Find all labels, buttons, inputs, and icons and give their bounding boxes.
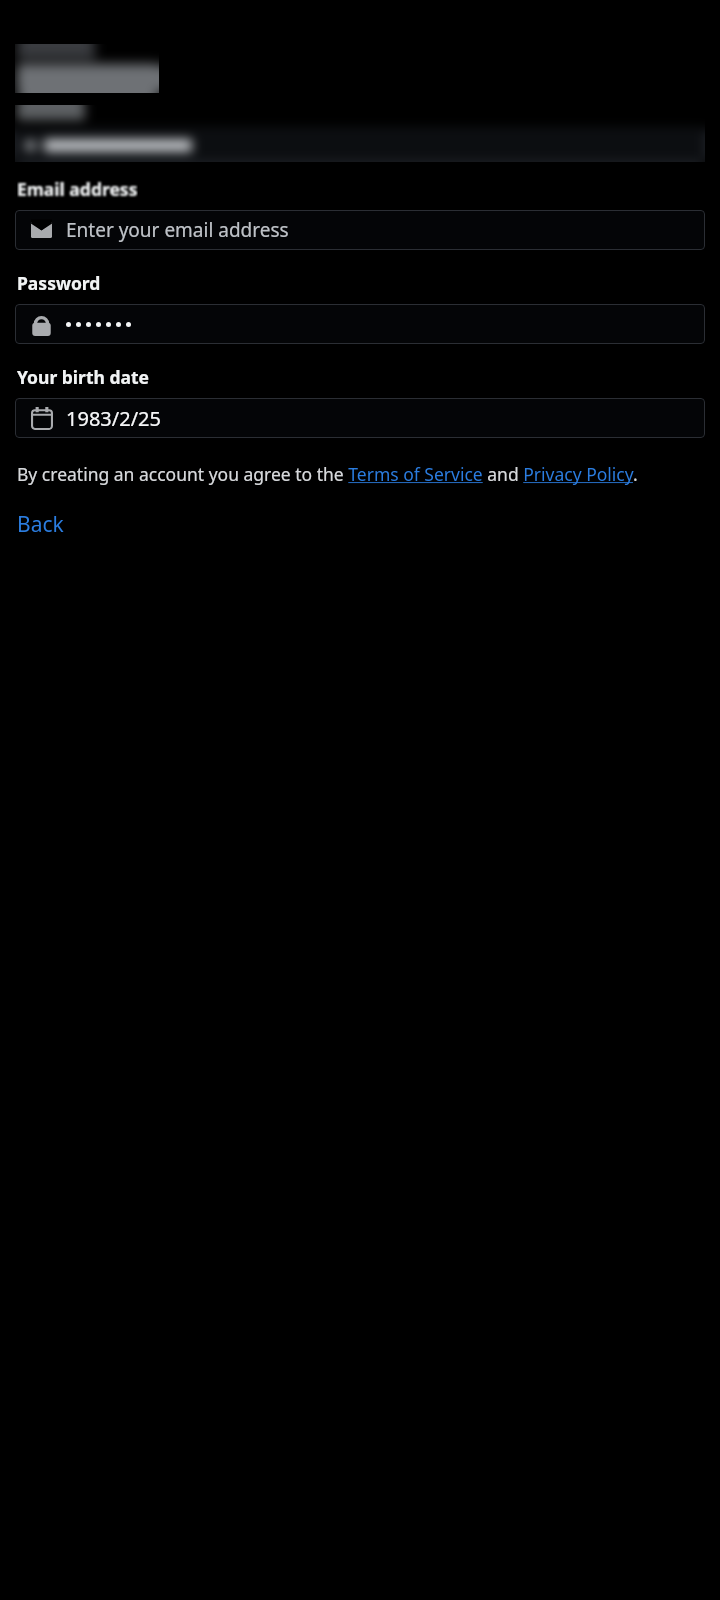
button[interactable]: Password field: [15, 304, 705, 344]
staticText: Password: [17, 271, 101, 295]
button[interactable]: [15, 128, 705, 162]
staticText: Enter your email address: [66, 217, 289, 243]
staticText: Back: [17, 510, 64, 539]
staticText: 1983/2/25: [66, 405, 161, 432]
staticText: Email address: [17, 177, 138, 201]
button[interactable]: Birth date field: [15, 398, 705, 438]
staticText: Your birth date: [17, 365, 149, 389]
staticText: By creating an account you agree to the …: [17, 462, 638, 486]
button[interactable]: Back: [15, 508, 70, 541]
button[interactable]: Email address field: [15, 210, 705, 250]
